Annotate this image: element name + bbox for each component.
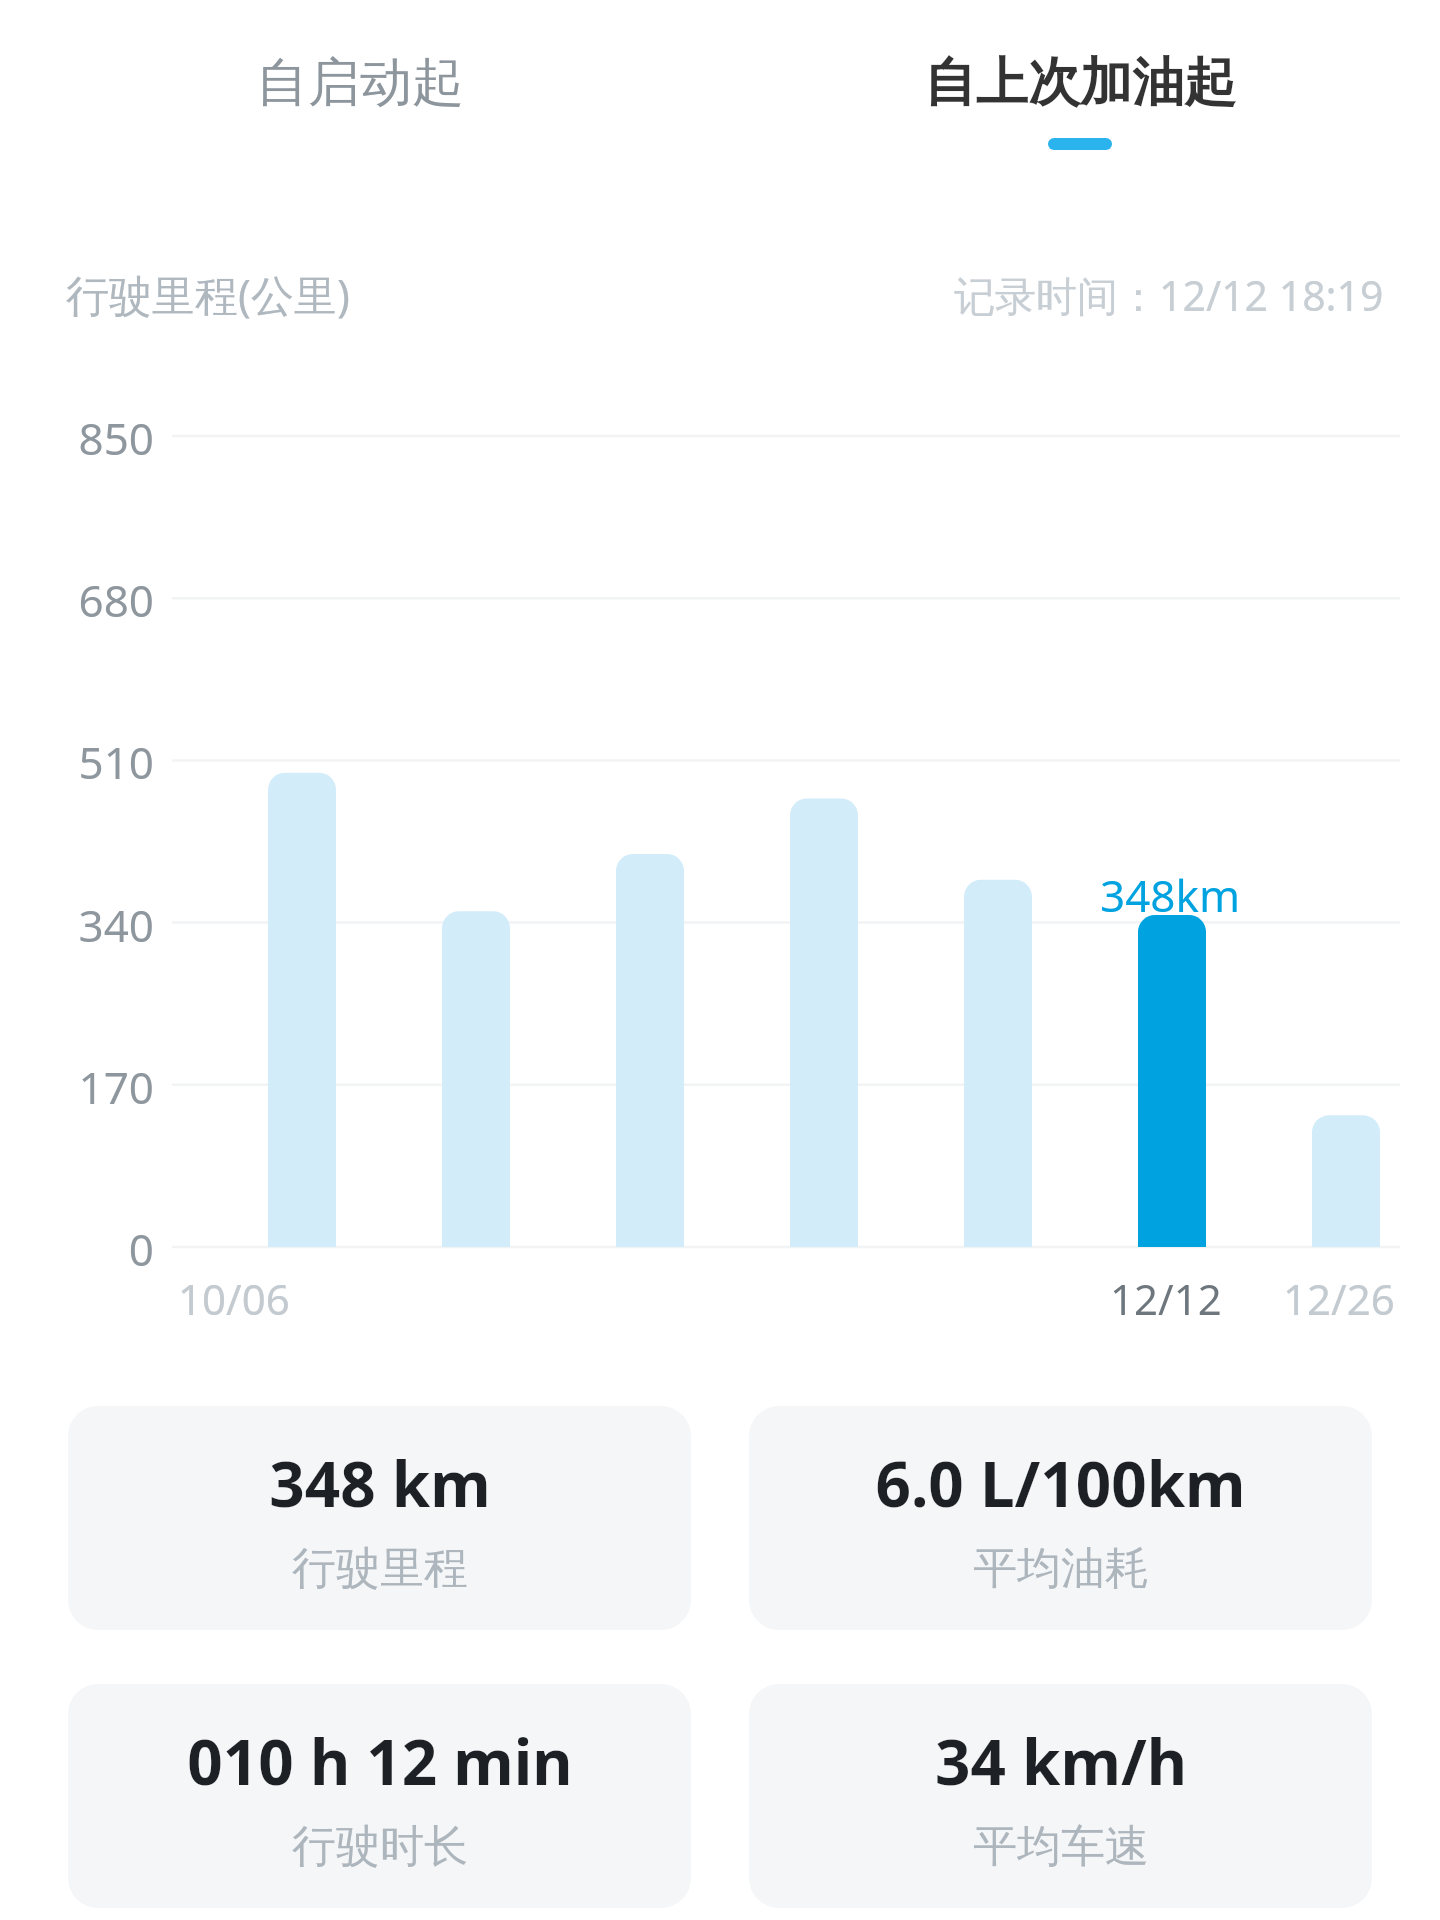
- button[interactable]: 自启动起: [0, 0, 720, 200]
- staticText: 680: [24, 570, 154, 630]
- staticText: 34 km/h: [935, 1719, 1187, 1803]
- staticText: 平均油耗: [973, 1541, 1149, 1596]
- staticText: 行驶里程: [292, 1541, 468, 1596]
- staticText: 平均车速: [973, 1819, 1149, 1874]
- button[interactable]: 348 km: [68, 1406, 691, 1630]
- staticText: 850: [24, 408, 154, 468]
- button[interactable]: 010 h 12 min: [68, 1684, 691, 1908]
- staticText: 自上次加油起: [924, 50, 1236, 116]
- button[interactable]: 自上次加油起: [720, 0, 1440, 200]
- staticText: 0: [24, 1219, 154, 1279]
- staticText: 6.0 L/100km: [875, 1441, 1246, 1525]
- staticText: 行驶时长: [292, 1819, 468, 1874]
- staticText: 12/12: [1110, 1270, 1222, 1327]
- staticText: 12/26: [1283, 1270, 1395, 1327]
- staticText: 记录时间：12/12 18:19: [954, 267, 1384, 323]
- staticText: 自启动起: [256, 50, 464, 116]
- button[interactable]: 34 km/h: [749, 1684, 1372, 1908]
- staticText: 行驶里程(公里): [66, 265, 350, 324]
- staticText: 010 h 12 min: [187, 1719, 573, 1803]
- staticText: 10/06: [178, 1270, 290, 1327]
- button[interactable]: 6.0 L/100km: [749, 1406, 1372, 1630]
- staticText: 348km: [1100, 865, 1241, 925]
- staticText: 340: [24, 895, 154, 955]
- staticText: 348 km: [269, 1441, 491, 1525]
- staticText: 170: [24, 1057, 154, 1117]
- staticText: 510: [24, 732, 154, 792]
